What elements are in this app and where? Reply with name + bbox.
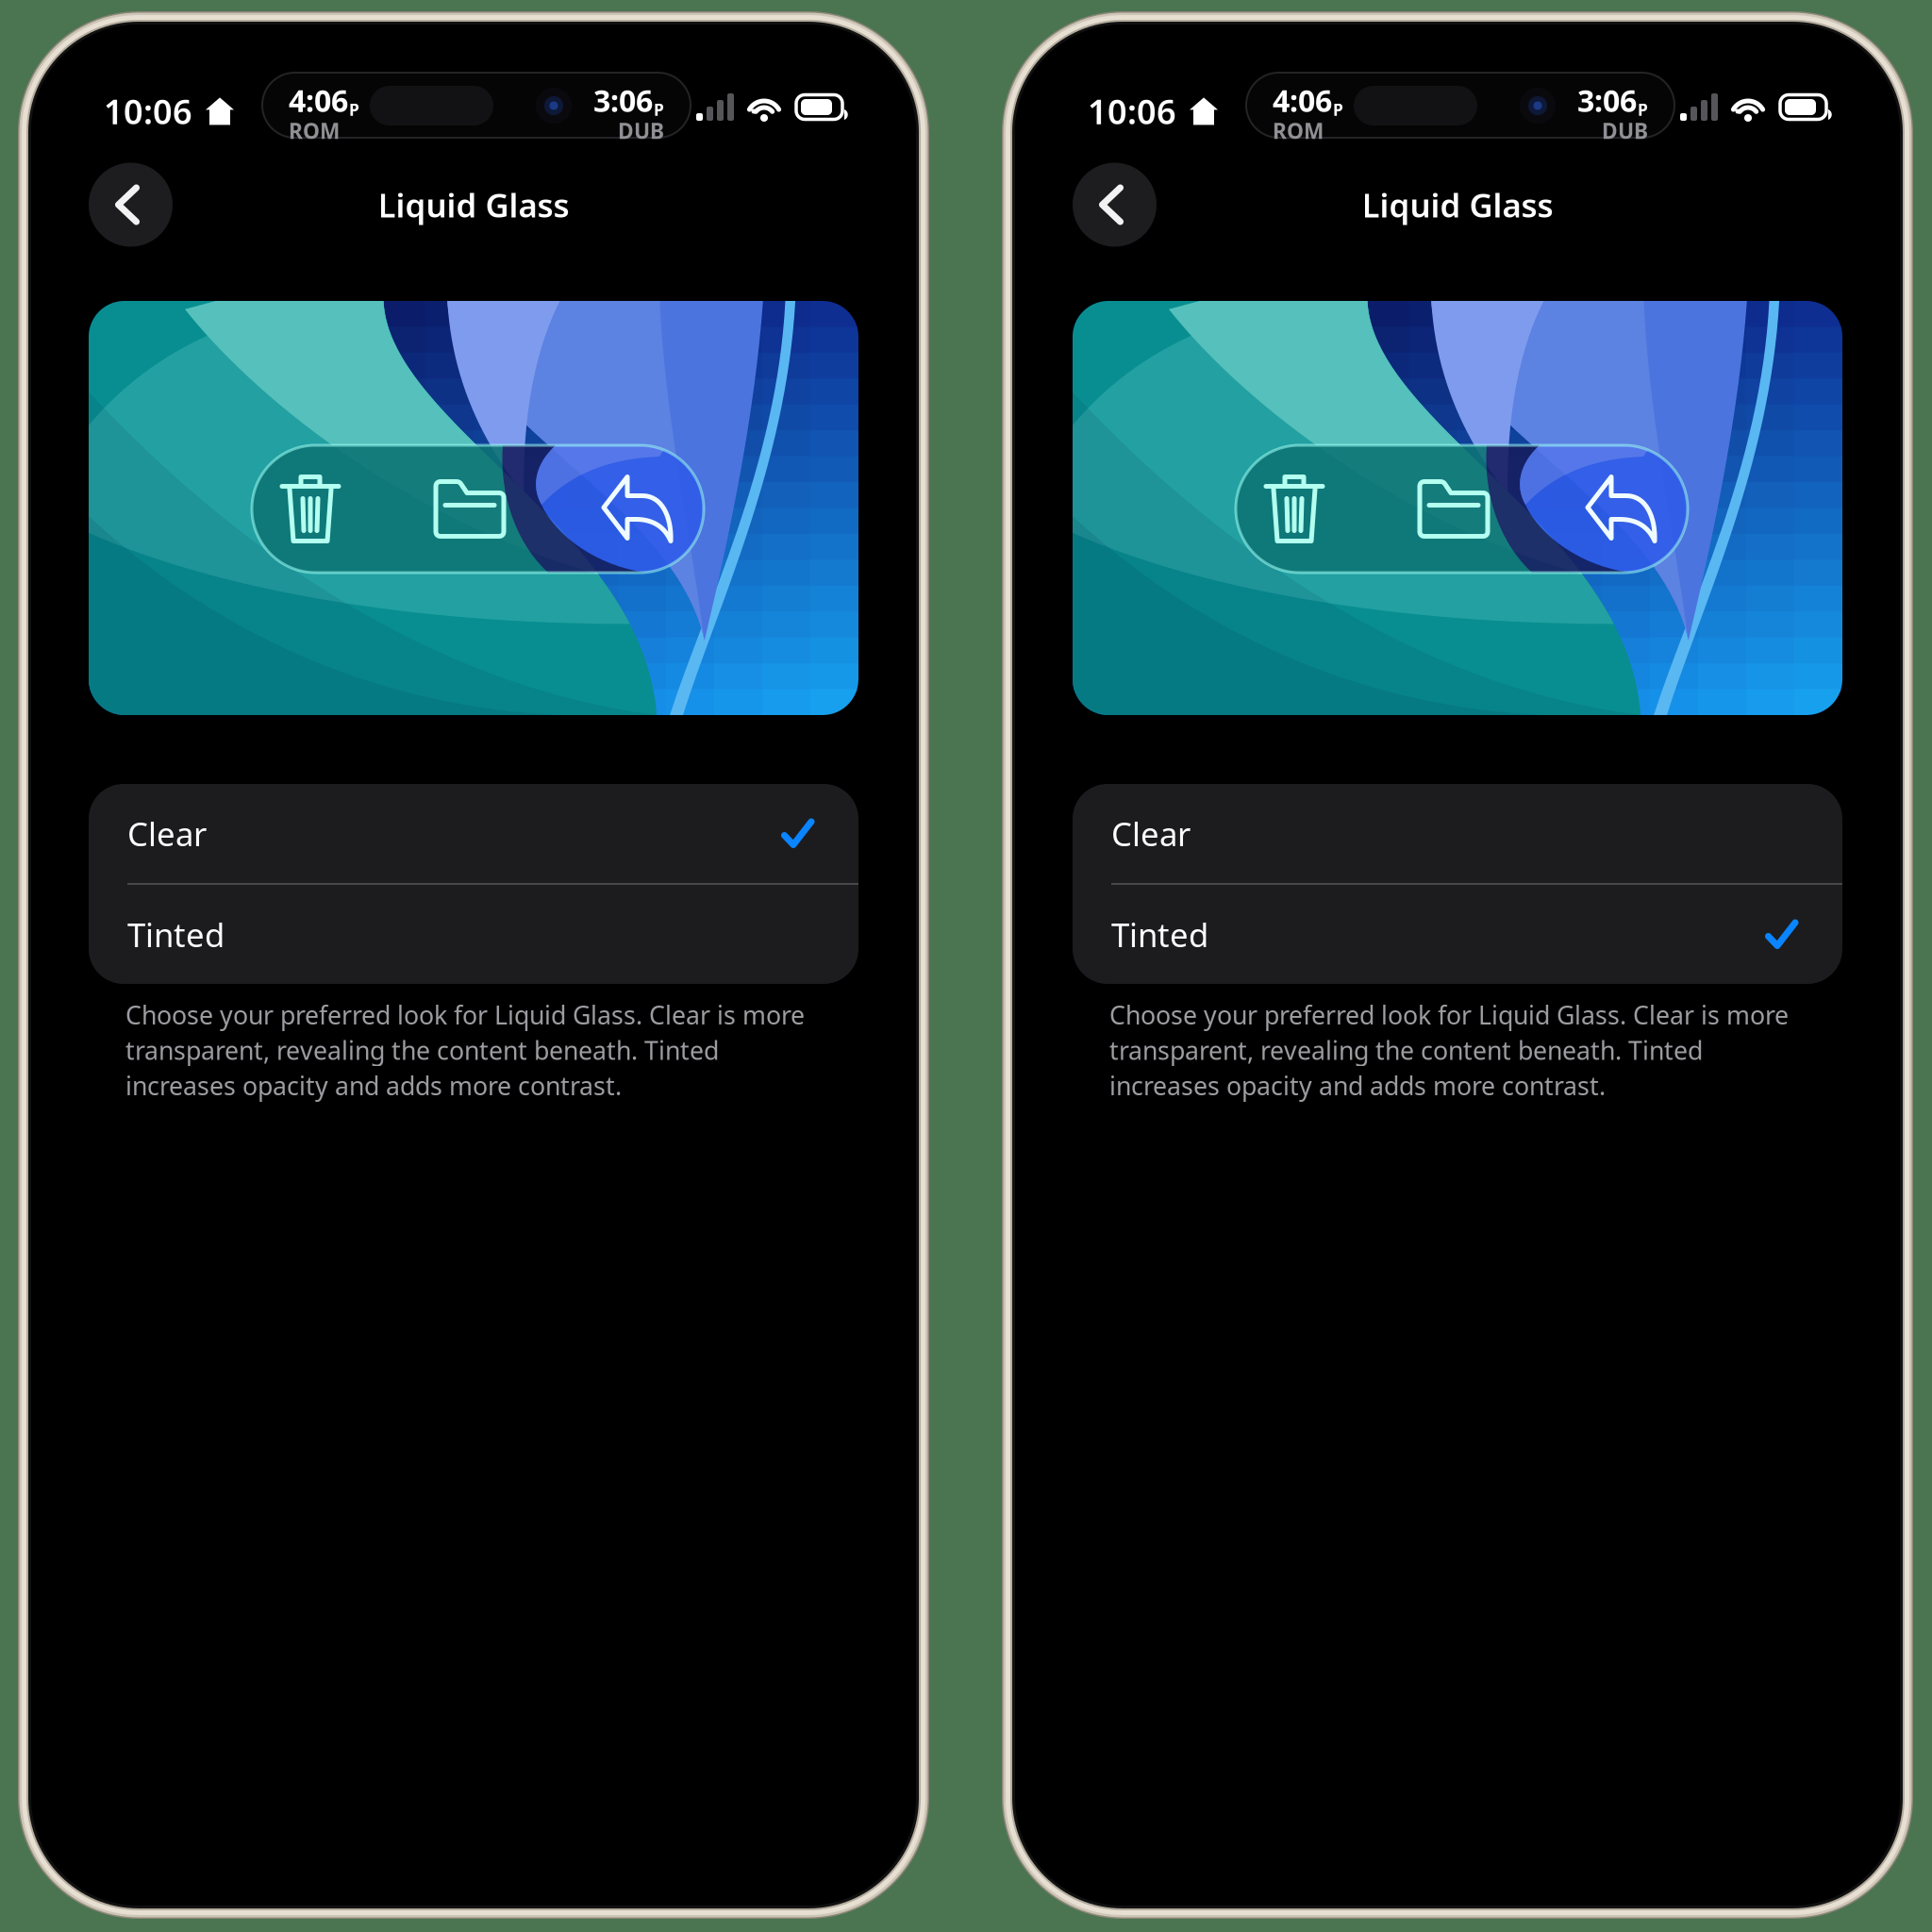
staticText: Choose your preferred look for Liquid Gl… [125, 998, 805, 1031]
staticText: 3:06 [593, 80, 653, 120]
staticText: increases opacity and adds more contrast… [1109, 1069, 1606, 1102]
button[interactable]: Move to folder [369, 445, 571, 573]
staticText: Tinted [127, 913, 225, 956]
button[interactable]: Back [89, 163, 173, 247]
button[interactable]: Reply [1555, 445, 1688, 573]
staticText: Liquid Glass [378, 183, 569, 226]
staticText: P [1638, 99, 1648, 120]
staticText: Tinted [1111, 913, 1208, 956]
staticText: P [654, 99, 664, 120]
button[interactable]: Delete [252, 445, 369, 573]
button[interactable]: Delete [1236, 445, 1353, 573]
staticText: transparent, revealing the content benea… [1109, 1033, 1703, 1067]
staticText: 10:06 [104, 89, 192, 134]
staticText: P [349, 99, 359, 120]
button[interactable]: Move to folder [1353, 445, 1555, 573]
staticText: Clear [127, 812, 207, 855]
staticText: DUB [1602, 117, 1648, 145]
button[interactable]: Clear [1073, 784, 1842, 883]
staticText: P [1333, 99, 1343, 120]
staticText: 4:06 [1273, 80, 1332, 120]
staticText: 3:06 [1577, 80, 1637, 120]
button[interactable]: Back [1073, 163, 1157, 247]
staticText: increases opacity and adds more contrast… [125, 1069, 622, 1102]
staticText: 4:06 [289, 80, 348, 120]
staticText: Clear [1111, 812, 1191, 855]
staticText: 10:06 [1088, 89, 1176, 134]
button[interactable]: Clear [89, 784, 858, 883]
staticText: transparent, revealing the content benea… [125, 1033, 719, 1067]
staticText: DUB [618, 117, 664, 145]
button[interactable]: Tinted [1073, 885, 1842, 984]
staticText: ROM [289, 117, 340, 145]
staticText: Choose your preferred look for Liquid Gl… [1109, 998, 1789, 1031]
button[interactable]: Tinted [89, 885, 858, 984]
button[interactable]: Reply [571, 445, 704, 573]
staticText: ROM [1273, 117, 1324, 145]
staticText: Liquid Glass [1362, 183, 1553, 226]
